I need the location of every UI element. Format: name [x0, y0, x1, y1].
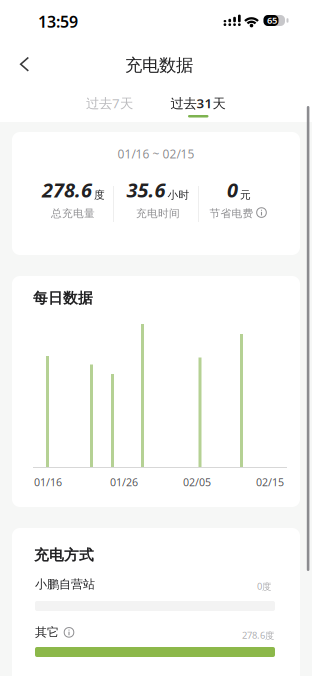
- staticText: 其它: [35, 625, 59, 640]
- staticText: 01/16: [34, 475, 62, 489]
- staticText: 小时: [167, 188, 189, 202]
- staticText: 0度: [257, 580, 271, 592]
- staticText: 元: [240, 188, 251, 202]
- button[interactable]: [6, 50, 40, 80]
- staticText: 02/05: [183, 475, 211, 489]
- staticText: 65: [267, 14, 277, 26]
- staticText: 节省电费: [209, 207, 253, 220]
- staticText: 过去31天: [170, 94, 225, 112]
- staticText: 过去7天: [86, 94, 133, 112]
- staticText: 充电时间: [136, 207, 180, 220]
- staticText: 度: [94, 188, 105, 202]
- button[interactable]: 其它: [35, 625, 74, 640]
- button[interactable]: 节省电费: [178, 207, 298, 220]
- staticText: 小鹏自营站: [35, 577, 95, 592]
- staticText: 0: [227, 176, 238, 203]
- staticText: 278.6度: [242, 629, 274, 641]
- button[interactable]: 过去7天: [69, 88, 149, 118]
- staticText: 充电方式: [34, 546, 94, 564]
- staticText: 总充电量: [51, 207, 95, 220]
- staticText: 01/26: [110, 475, 138, 489]
- button[interactable]: 过去31天: [158, 88, 238, 118]
- staticText: 02/15: [256, 475, 284, 489]
- staticText: 充电数据: [125, 54, 193, 76]
- staticText: 每日数据: [33, 289, 93, 307]
- staticText: 13:59: [38, 11, 78, 32]
- staticText: 278.6: [42, 176, 92, 203]
- staticText: 35.6: [126, 176, 165, 203]
- staticText: 01/16 ~ 02/15: [117, 146, 194, 162]
